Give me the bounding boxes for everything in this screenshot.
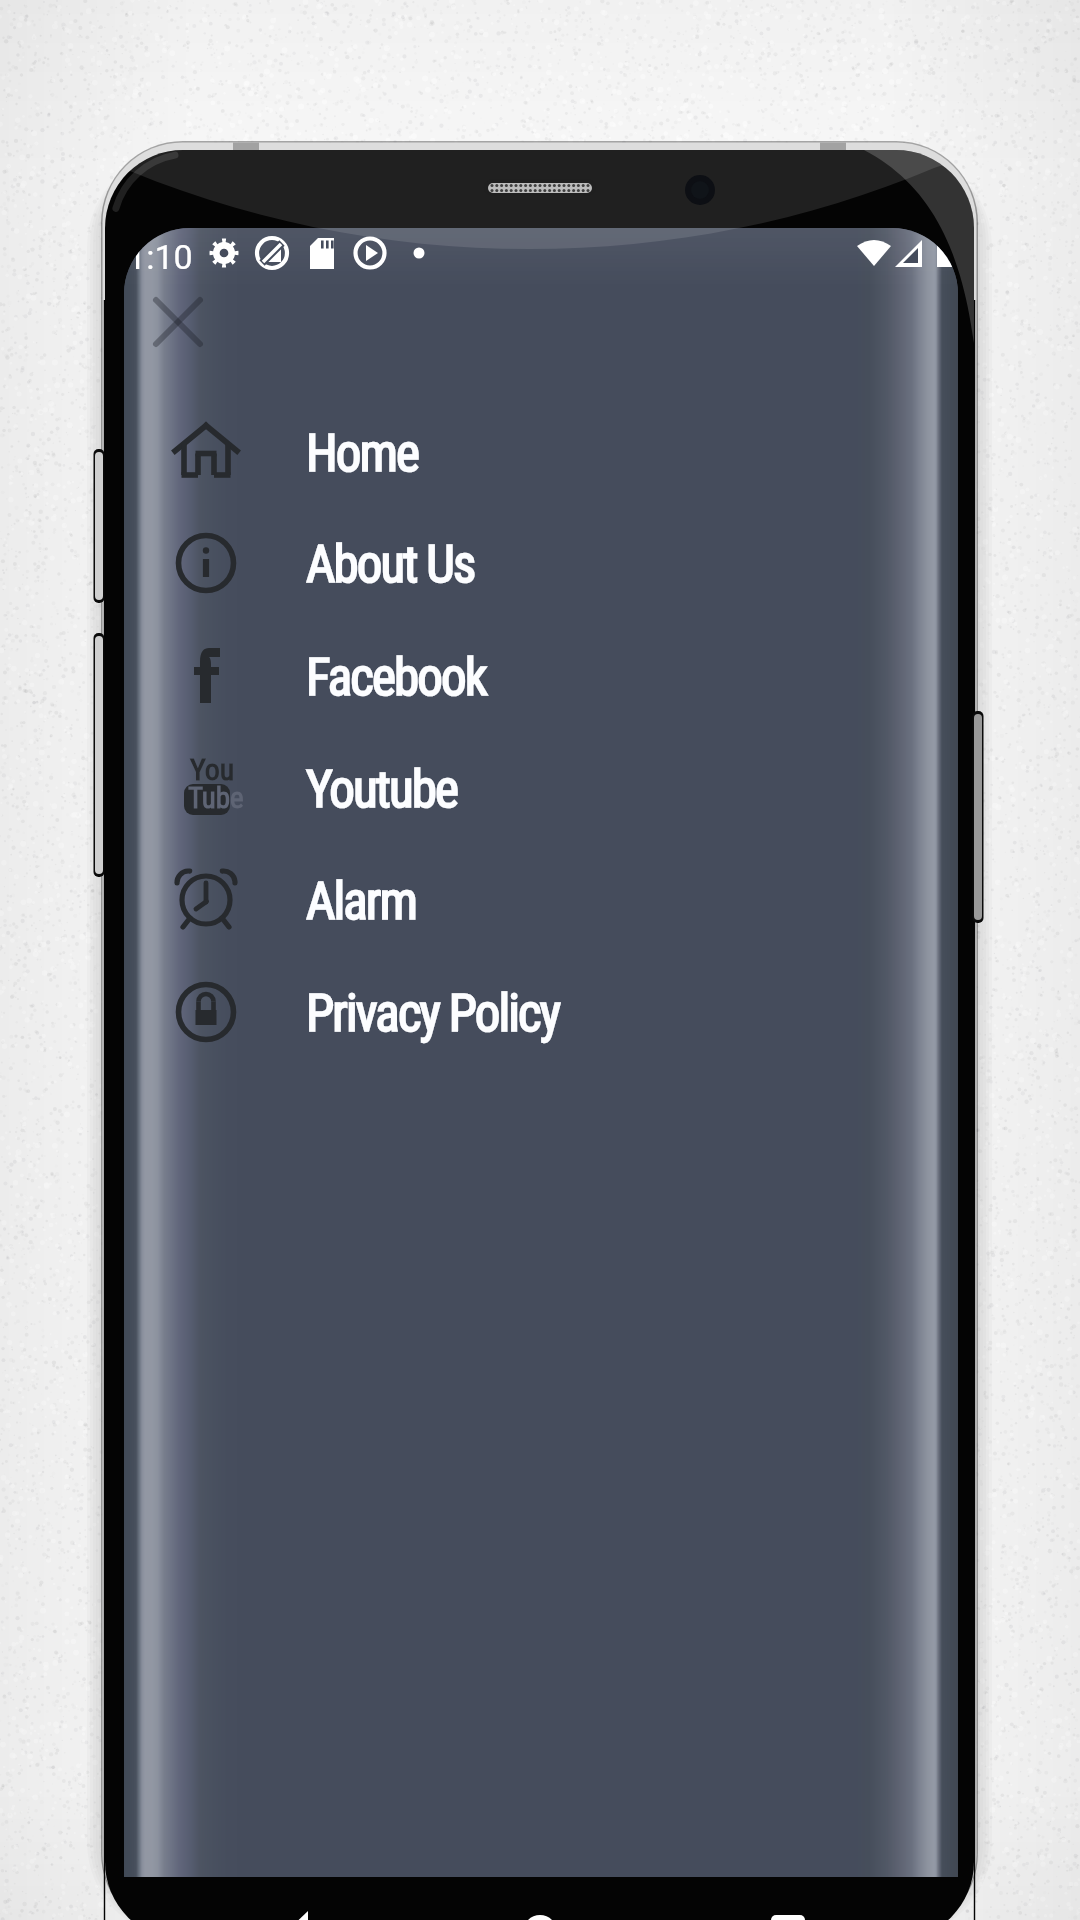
staticText: Tube xyxy=(188,781,244,815)
button[interactable]: Youtube xyxy=(124,732,958,844)
staticText: Home xyxy=(306,424,418,484)
staticText: About Us xyxy=(306,535,475,595)
button[interactable]: Facebook xyxy=(124,620,958,732)
staticText: Facebook xyxy=(306,648,486,708)
staticText: 11:10 xyxy=(124,237,193,277)
button[interactable]: Close menu xyxy=(140,284,218,362)
staticText: You xyxy=(190,752,235,787)
button[interactable]: Alarm xyxy=(124,844,958,956)
staticText: Alarm xyxy=(306,872,416,932)
button[interactable]: Privacy Policy xyxy=(124,956,958,1068)
staticText: Privacy Policy xyxy=(306,984,560,1044)
button[interactable]: About Us xyxy=(124,507,958,619)
button[interactable]: Home xyxy=(124,396,958,508)
staticText: Youtube xyxy=(306,760,457,820)
